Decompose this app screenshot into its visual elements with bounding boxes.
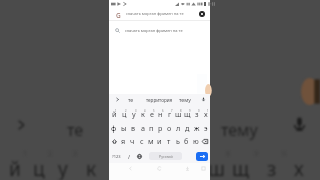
button[interactable]: 5 [147,107,156,121]
button[interactable]: я [119,134,128,148]
staticText: те [128,96,134,103]
button[interactable]: те [124,94,138,105]
button[interactable]: т [164,134,173,148]
staticText: 9 [189,109,191,113]
staticText: ?123 [112,154,121,159]
button[interactable]: 1 [201,107,210,121]
staticText: G [116,11,121,19]
staticText: т [167,136,171,146]
staticText: м [148,136,154,146]
button[interactable]: ы [119,121,129,134]
staticText: н [158,109,163,119]
staticText: ы [121,123,127,133]
button[interactable]: Downloads [181,163,194,174]
staticText: л [176,123,181,133]
button[interactable]: ю [191,134,200,148]
staticText: ч [130,136,135,146]
button[interactable]: л [174,121,183,134]
button[interactable]: 8 [174,107,183,121]
staticText: ж [194,123,200,133]
staticText: 2 [125,109,127,113]
button[interactable]: Search [196,152,208,161]
button[interactable]: с [137,134,146,148]
button[interactable]: скачать морган фримен на те [109,24,210,36]
staticText: щ [232,156,250,180]
staticText: ю [193,136,199,146]
staticText: скачать морган фримен на те [126,11,184,16]
staticText: у [132,109,136,119]
button[interactable]: в [129,121,138,134]
button[interactable]: ь [173,134,182,148]
button[interactable]: Change language [134,149,144,163]
staticText: 0 [198,109,200,113]
button[interactable]: 4 [138,107,147,121]
button[interactable]: ч [128,134,137,148]
button[interactable]: 0 [192,107,201,121]
button[interactable]: ?123 [110,149,123,163]
staticText: 7 [171,109,173,113]
button[interactable]: Русский [149,152,182,160]
button[interactable]: Shift [109,134,119,148]
staticText: щ [184,109,191,119]
staticText: те [67,119,84,141]
staticText: тему [221,119,258,141]
staticText: х [294,156,304,180]
button[interactable]: о [165,121,174,134]
staticText: / [128,153,131,160]
button[interactable]: территория [142,94,176,105]
staticText: о [167,123,172,133]
staticText: 1 [115,109,117,113]
button[interactable]: б [182,134,191,148]
staticText: ц [33,156,45,180]
button[interactable]: д [183,121,192,134]
button[interactable]: тему [175,94,195,105]
staticText: к [141,109,145,119]
button[interactable]: 3 [129,107,138,121]
button[interactable]: Backspace [200,134,210,148]
staticText: с [140,136,144,146]
button[interactable]: / [125,149,134,163]
button[interactable]: и [155,134,164,148]
staticText: тему [179,96,191,103]
staticText: э [204,123,208,133]
button[interactable]: Reload [153,163,166,174]
staticText: ц [122,109,127,119]
button[interactable]: 1 [109,107,119,121]
button[interactable]: Voice input [199,94,208,105]
staticText: й [112,109,117,119]
staticText: з [267,156,277,180]
staticText: п [149,123,154,133]
button[interactable]: п [147,121,156,134]
staticText: а [141,123,145,133]
staticText: территория [146,97,173,103]
staticText: я [121,136,126,146]
button[interactable]: а [138,121,147,134]
button[interactable]: 9 [183,107,192,121]
staticText: б [184,136,189,146]
button[interactable]: More suggestions [112,94,122,105]
button[interactable]: 7 [165,107,174,121]
staticText: Русский [159,154,173,159]
button[interactable]: Tabs [197,163,210,174]
staticText: и [157,136,162,146]
button[interactable]: 2 [119,107,129,121]
staticText: у [58,156,68,180]
button[interactable]: 6 [156,107,165,121]
button[interactable]: ж [192,121,201,134]
staticText: р [158,123,163,133]
staticText: 8 [180,109,182,113]
button[interactable]: G [111,8,209,19]
button[interactable]: э [201,121,210,134]
button[interactable]: ф [109,121,119,134]
button[interactable]: м [146,134,155,148]
staticText: г [168,109,172,119]
button[interactable]: Clear query [199,11,205,17]
button[interactable]: р [156,121,165,134]
staticText: ь [176,136,180,146]
